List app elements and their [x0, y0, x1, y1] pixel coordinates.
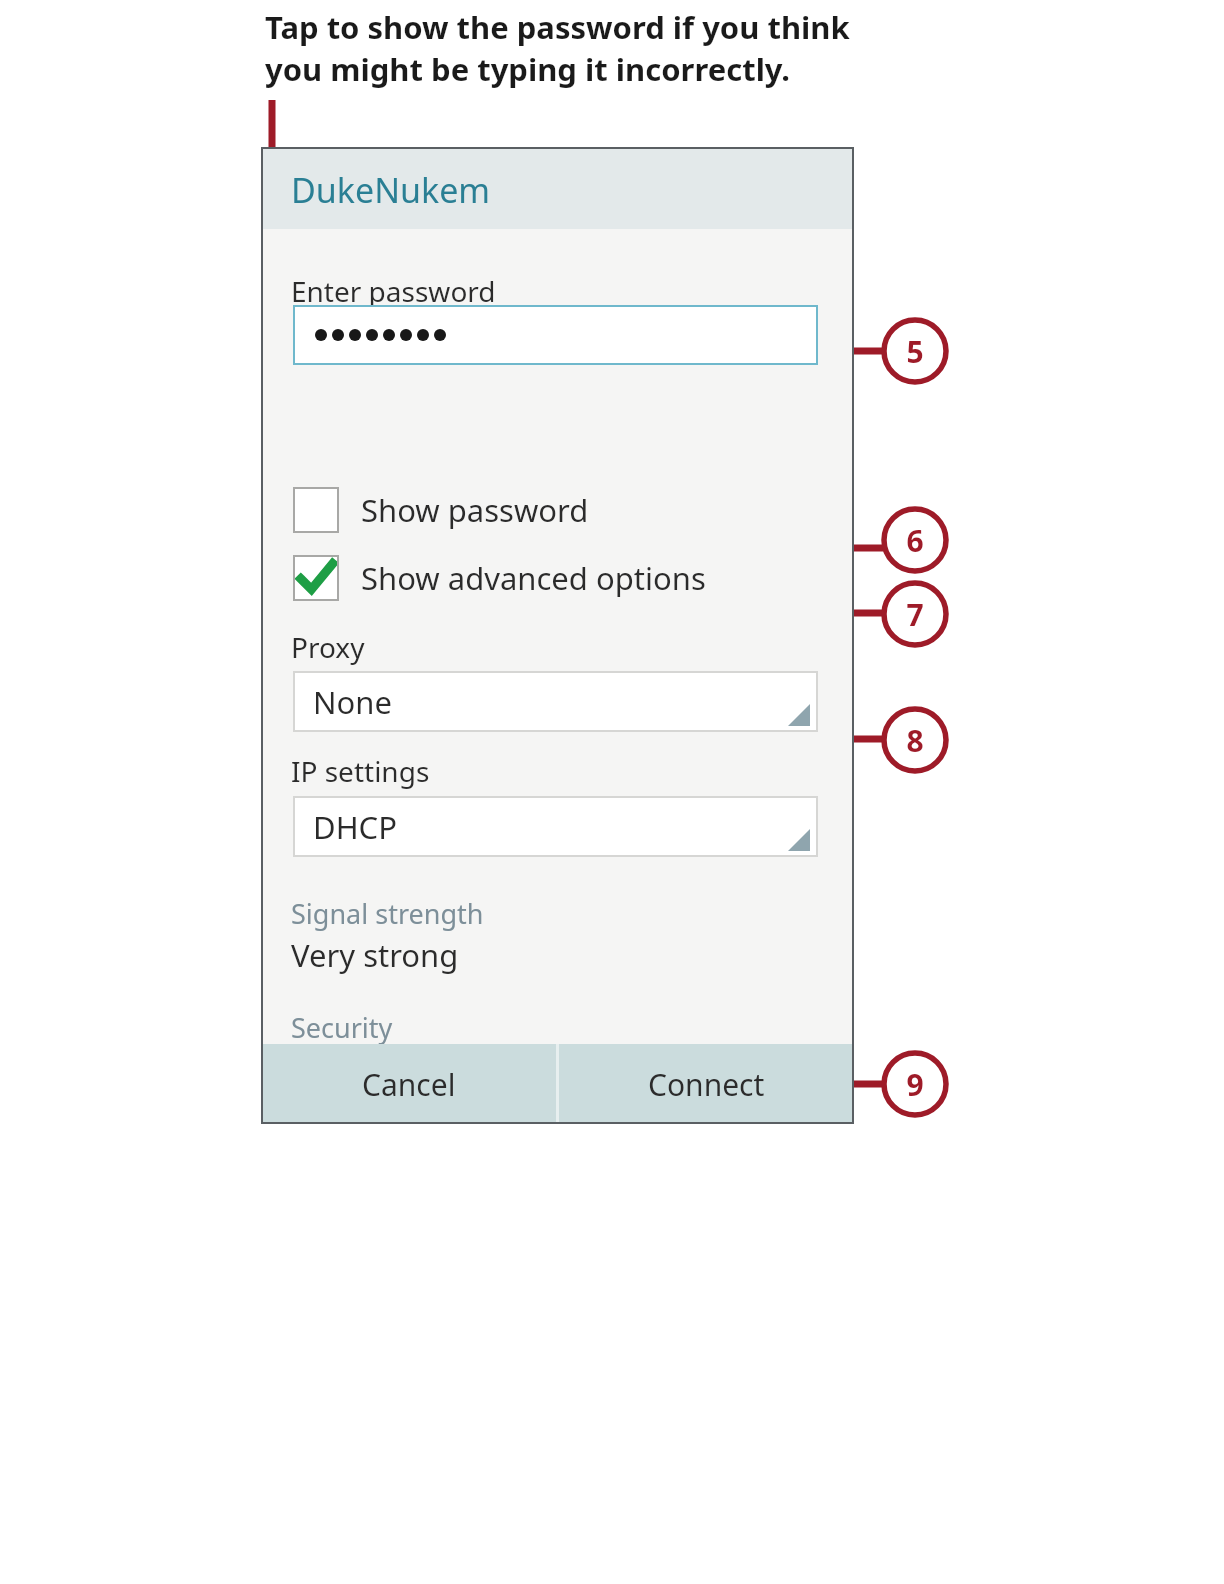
button[interactable]: Password field: [293, 305, 818, 365]
staticText: Show password: [361, 489, 589, 531]
staticText: Security: [291, 1009, 393, 1046]
button[interactable]: 5: [881, 317, 949, 385]
staticText: Proxy: [291, 628, 365, 666]
staticText: 6: [906, 520, 924, 561]
staticText: IP settings: [291, 752, 430, 790]
staticText: WPA/WPA2 PSK: [291, 1047, 515, 1089]
button[interactable]: 9: [881, 1050, 949, 1118]
staticText: Enter password: [291, 272, 496, 310]
staticText: 7: [906, 594, 924, 635]
button[interactable]: Cancel: [261, 1044, 556, 1124]
staticText: Connect: [648, 1064, 765, 1105]
staticText: Very strong: [291, 934, 459, 976]
button[interactable]: None: [293, 671, 818, 732]
staticText: 8: [906, 720, 924, 761]
staticText: you might be typing it incorrectly.: [265, 48, 791, 90]
staticText: 9: [906, 1064, 924, 1105]
staticText: 5: [906, 331, 924, 372]
staticText: Signal strength: [291, 895, 484, 932]
staticText: None: [313, 681, 392, 723]
button[interactable]: Show password: [293, 482, 589, 538]
staticText: Cancel: [362, 1064, 456, 1105]
staticText: Tap to show the password if you think: [265, 6, 850, 48]
button[interactable]: Show advanced options: [293, 550, 706, 606]
button[interactable]: 7: [881, 580, 949, 648]
button[interactable]: Connect: [559, 1044, 854, 1124]
button[interactable]: DHCP: [293, 796, 818, 857]
staticText: Show advanced options: [361, 557, 706, 599]
staticText: DHCP: [313, 806, 397, 848]
staticText: DukeNukem: [291, 167, 491, 213]
button[interactable]: 6: [881, 506, 949, 574]
button[interactable]: 8: [881, 706, 949, 774]
